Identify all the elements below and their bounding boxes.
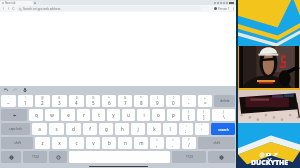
button[interactable]: caps lock xyxy=(1,123,30,135)
button[interactable]: t xyxy=(92,109,105,121)
button[interactable]: f xyxy=(83,123,97,135)
button[interactable]: ' xyxy=(195,123,209,135)
button[interactable]: l xyxy=(163,123,177,135)
button[interactable]: Undo xyxy=(3,87,9,93)
button[interactable]: 2 xyxy=(35,95,50,107)
button[interactable]: 5 xyxy=(86,95,100,107)
staticText: < xyxy=(156,138,158,142)
button[interactable]: x xyxy=(52,137,67,149)
staticText: b xyxy=(108,140,111,146)
button[interactable]: 8 xyxy=(134,95,148,107)
button[interactable]: shift xyxy=(198,137,235,149)
button[interactable]: o xyxy=(152,109,165,121)
button[interactable]: More options xyxy=(232,7,235,10)
button[interactable]: / xyxy=(182,137,196,149)
button[interactable]: 1 xyxy=(18,95,33,107)
button[interactable]: . xyxy=(166,137,180,149)
button[interactable]: 6 xyxy=(102,95,116,107)
button[interactable]: Back xyxy=(1,6,6,11)
button[interactable]: New tab xyxy=(0,1,33,5)
button[interactable]: shift xyxy=(1,137,33,149)
staticText: Person 1 xyxy=(218,7,230,11)
staticText: i xyxy=(143,112,145,118)
button[interactable]: d xyxy=(66,123,81,135)
button[interactable]: q xyxy=(29,109,43,121)
staticText: ? xyxy=(188,138,190,142)
button[interactable]: [ xyxy=(182,109,195,121)
staticText: ( xyxy=(157,96,158,100)
button[interactable]: 9 xyxy=(150,95,164,107)
button[interactable]: key xyxy=(49,151,67,163)
button[interactable]: Instagram xyxy=(260,153,264,157)
staticText: = xyxy=(204,100,207,106)
button[interactable]: key xyxy=(1,151,21,163)
button[interactable]: 7 xyxy=(118,95,132,107)
button[interactable]: Twitter xyxy=(273,152,278,157)
staticText: 4 xyxy=(75,100,78,106)
button[interactable]: key xyxy=(208,151,235,163)
button[interactable]: ~ xyxy=(1,95,16,107)
staticText: * xyxy=(140,96,142,100)
button[interactable]: j xyxy=(131,123,145,135)
button[interactable]: c xyxy=(69,137,84,149)
button[interactable]: h xyxy=(115,123,129,135)
staticText: $ xyxy=(76,96,78,100)
button[interactable]: Forward xyxy=(6,6,11,11)
staticText: + xyxy=(204,96,206,100)
button[interactable]: p xyxy=(167,109,180,121)
button[interactable]: Redo xyxy=(12,87,18,93)
button[interactable]: w xyxy=(45,109,59,121)
button[interactable]: u xyxy=(122,109,135,121)
button[interactable]: b xyxy=(102,137,116,149)
button[interactable]: Search or type web address xyxy=(17,6,201,11)
button[interactable]: a xyxy=(32,123,47,135)
button[interactable]: 3 xyxy=(52,95,67,107)
staticText: / xyxy=(188,142,190,148)
button[interactable]: ?123 xyxy=(23,151,47,163)
button[interactable]: k xyxy=(147,123,161,135)
staticText: \ xyxy=(223,114,225,120)
button[interactable]: 0 xyxy=(166,95,180,107)
button[interactable]: g xyxy=(99,123,113,135)
button[interactable]: y xyxy=(107,109,120,121)
button[interactable]: n xyxy=(118,137,132,149)
staticText: ; xyxy=(185,128,187,134)
button[interactable]: Profile xyxy=(214,7,217,10)
button[interactable]: - xyxy=(182,95,196,107)
staticText: 7 xyxy=(124,100,127,106)
staticText: Search or type web address xyxy=(23,7,61,11)
button[interactable]: ; xyxy=(179,123,193,135)
button[interactable]: delete xyxy=(214,95,235,107)
button[interactable]: search xyxy=(211,123,235,135)
staticText: j xyxy=(137,126,139,132)
button[interactable]: i xyxy=(137,109,150,121)
button[interactable]: r xyxy=(77,109,90,121)
button[interactable]: YouTube xyxy=(266,152,271,157)
button[interactable]: ?123 xyxy=(172,151,206,163)
button[interactable]: \ xyxy=(212,109,235,121)
button[interactable]: , xyxy=(150,137,164,149)
button[interactable]: 4 xyxy=(69,95,84,107)
button[interactable]: m xyxy=(134,137,148,149)
button[interactable]: Reload xyxy=(11,6,16,11)
button[interactable]: Voice input xyxy=(22,87,28,93)
button[interactable]: New tab xyxy=(33,1,37,5)
staticText: delete xyxy=(220,99,230,103)
staticText: g xyxy=(105,126,108,132)
staticText: ?123 xyxy=(32,155,39,159)
button[interactable]: v xyxy=(86,137,100,149)
button[interactable]: e xyxy=(61,109,75,121)
button[interactable]: z xyxy=(35,137,50,149)
button[interactable]: s xyxy=(49,123,64,135)
staticText: & xyxy=(124,96,127,100)
button[interactable]: ] xyxy=(197,109,210,121)
button[interactable]: = xyxy=(198,95,212,107)
button[interactable]: key xyxy=(1,109,27,121)
staticText: r xyxy=(83,112,85,118)
